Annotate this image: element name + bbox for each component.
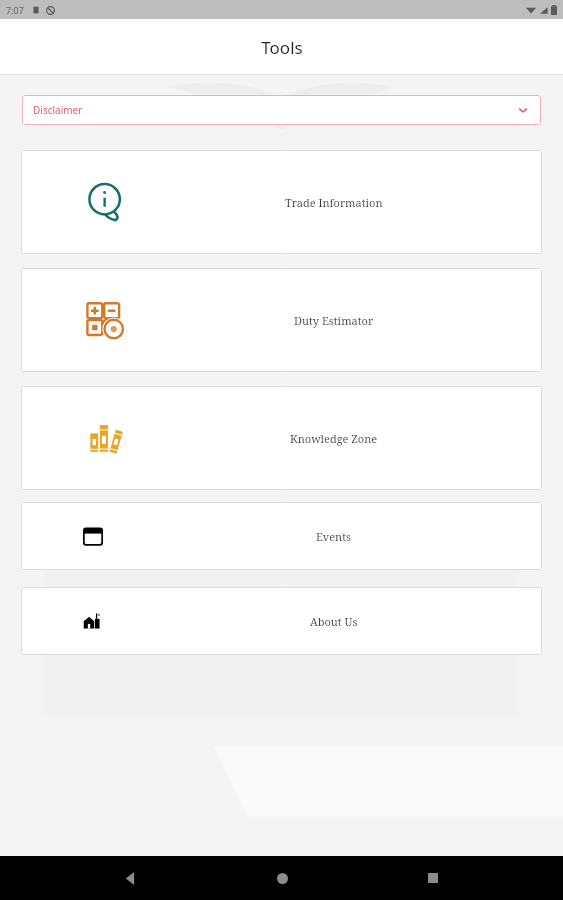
staticText: Tools	[261, 36, 303, 59]
button[interactable]: Events	[21, 502, 542, 570]
staticText: 7:07	[6, 4, 24, 16]
button[interactable]: Disclaimer	[22, 95, 541, 125]
button[interactable]: Knowledge Zone	[21, 386, 542, 490]
button[interactable]: Trade Information	[21, 150, 542, 254]
button[interactable]: Duty Estimator	[21, 268, 542, 372]
staticText: Knowledge Zone	[290, 431, 378, 446]
staticText: Trade Information	[285, 195, 383, 210]
button[interactable]: About Us	[21, 587, 542, 655]
button[interactable]: Recent apps	[411, 856, 455, 900]
button[interactable]: Home	[260, 856, 304, 900]
staticText: Events	[316, 529, 352, 544]
button[interactable]: Back	[108, 856, 152, 900]
staticText: Disclaimer	[33, 103, 83, 117]
staticText: Duty Estimator	[294, 313, 374, 328]
staticText: About Us	[310, 614, 358, 629]
